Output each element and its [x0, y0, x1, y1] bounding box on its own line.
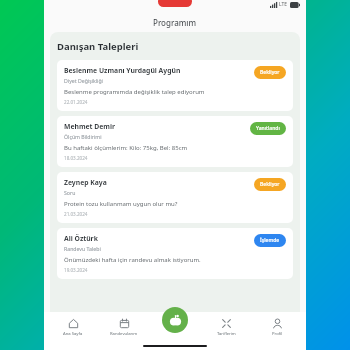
staticText: Diyet Değişikliği — [64, 77, 103, 84]
button[interactable]: İşlemde — [254, 234, 286, 247]
staticText: 18.03.2024 — [64, 155, 88, 161]
staticText: Danışan Talepleri — [57, 40, 139, 53]
staticText: Soru — [64, 189, 76, 196]
button[interactable]: Mehmet Demir — [57, 116, 293, 167]
button[interactable]: Bekliyor — [254, 178, 286, 191]
button[interactable]: Tariflerim — [204, 316, 248, 339]
staticText: LTE — [279, 1, 288, 8]
button[interactable]: Ana Sayfa — [51, 316, 95, 339]
staticText: Bekliyor — [260, 69, 280, 76]
staticText: 21.03.2024 — [64, 211, 88, 217]
staticText: Zeynep Kaya — [64, 178, 107, 187]
button[interactable]: Beslenme — [162, 307, 188, 333]
button[interactable]: Zeynep Kaya — [57, 172, 293, 223]
staticText: Önümüzdeki hafta için randevu almak isti… — [64, 256, 201, 264]
staticText: 19.03.2024 — [64, 267, 88, 273]
staticText: Bekliyor — [260, 181, 280, 188]
staticText: Beslenme Uzmanı Yurdagül Aygün — [64, 66, 181, 75]
button[interactable]: Beslenme Uzmanı Yurdagül Aygün — [57, 60, 293, 111]
staticText: 22.01.2024 — [64, 99, 88, 105]
button[interactable]: Yanıtlandı — [250, 122, 286, 135]
button[interactable]: Ali Öztürk — [57, 228, 293, 279]
staticText: Tariflerim — [217, 331, 236, 337]
button[interactable]: Bekliyor — [254, 66, 286, 79]
staticText: Ana Sayfa — [63, 331, 83, 337]
staticText: Randevu Talebi — [64, 245, 101, 252]
staticText: Ali Öztürk — [64, 234, 98, 243]
staticText: Randevularım — [110, 331, 138, 337]
staticText: Profil — [272, 331, 283, 337]
staticText: Mehmet Demir — [64, 122, 116, 131]
staticText: Ölçüm Bildirimi — [64, 133, 102, 140]
staticText: Bu haftaki ölçümlerim: Kilo: 75kg, Bel: … — [64, 144, 188, 152]
staticText: Yanıtlandı — [256, 125, 280, 132]
staticText: Protein tozu kullanmam uygun olur mu? — [64, 200, 178, 208]
staticText: İşlemde — [260, 237, 280, 244]
button[interactable]: Profil — [255, 316, 299, 339]
button[interactable]: Randevularım — [102, 316, 146, 339]
staticText: Beslenme programımda değişiklik talep ed… — [64, 88, 205, 96]
staticText: Programım — [153, 17, 197, 28]
